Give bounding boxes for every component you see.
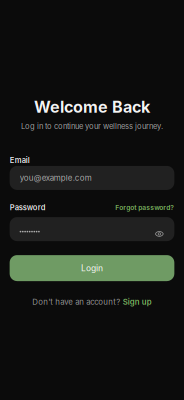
staticText: Sign up	[123, 297, 152, 307]
staticText: Password	[10, 203, 46, 212]
staticText: Don't have an account?	[32, 297, 120, 307]
staticText: you@example.com	[20, 173, 92, 183]
button[interactable]: Forgot password?	[115, 203, 174, 212]
staticText: Email	[10, 156, 30, 165]
button[interactable]: you@example.com	[10, 166, 174, 190]
staticText: Log in to continue your wellness journey…	[21, 121, 163, 131]
button[interactable]: Login	[10, 255, 174, 281]
staticText: Login	[81, 263, 103, 273]
button[interactable]: Sign up	[123, 297, 152, 307]
button[interactable]	[10, 217, 174, 241]
staticText: Forgot password?	[115, 203, 174, 212]
staticText: Welcome Back	[34, 97, 150, 116]
